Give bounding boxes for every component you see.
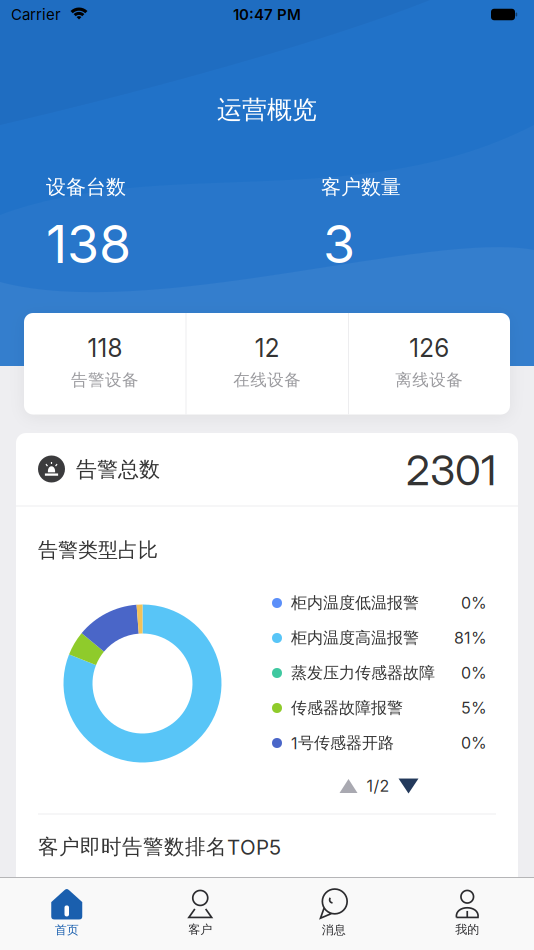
button[interactable]: 消息 [274,878,394,948]
staticText: 0% [461,663,487,683]
staticText: 10:47 PM [233,5,301,23]
staticText: 2301 [406,445,496,495]
staticText: 0% [461,593,487,613]
staticText: 客户 [188,922,212,937]
staticText: 客户即时告警数排名TOP5 [38,834,281,860]
staticText: 在线设备 [233,370,301,390]
button[interactable]: 下一页 [398,778,418,793]
staticText: 告警设备 [71,370,139,390]
staticText: 蒸发压力传感器故障 [291,663,435,683]
staticText: 1号传感器开路 [291,733,394,753]
staticText: 客户数量 [321,174,401,200]
button[interactable]: 上一页 [339,779,357,793]
staticText: 首页 [55,922,79,937]
staticText: 126 [409,333,449,363]
staticText: 5% [461,698,487,718]
button[interactable]: 我的 [407,878,527,948]
staticText: 传感器故障报警 [291,698,403,718]
staticText: 告警总数 [76,456,160,483]
staticText: Carrier [11,5,61,23]
button[interactable]: 客户 [140,878,260,948]
staticText: 运营概览 [217,94,317,126]
staticText: 0% [461,733,487,753]
staticText: 柜内温度低温报警 [291,593,419,613]
staticText: 告警类型占比 [38,537,158,563]
staticText: 12 [255,333,280,363]
staticText: 柜内温度高温报警 [291,628,419,648]
staticText: 消息 [322,922,346,937]
staticText: 3 [323,212,355,275]
staticText: 1/2 [366,776,389,796]
staticText: 我的 [455,922,479,937]
button[interactable]: 首页 [7,878,127,948]
staticText: 118 [87,333,122,363]
staticText: 81% [454,628,487,648]
staticText: 设备台数 [46,174,126,200]
staticText: 138 [46,212,131,275]
staticText: 离线设备 [395,370,463,390]
